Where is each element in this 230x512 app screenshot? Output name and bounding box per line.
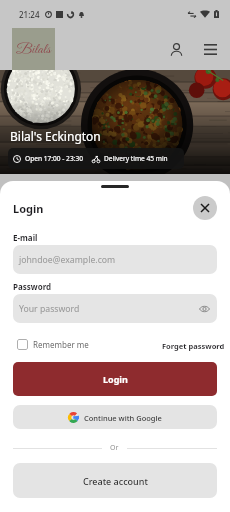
button[interactable]: Close — [193, 196, 217, 220]
staticText: johndoe@example.com — [19, 254, 116, 266]
staticText: Remember me — [33, 339, 89, 350]
button[interactable]: Account — [164, 37, 188, 61]
staticText: Continue with Google — [84, 413, 162, 423]
button[interactable]: Remember me — [17, 339, 89, 350]
staticText: Login — [13, 201, 44, 216]
button[interactable]: Create account — [13, 463, 217, 498]
button[interactable]: Continue with Google — [13, 405, 217, 429]
button[interactable]: Show password — [197, 302, 211, 316]
staticText: Login — [103, 373, 128, 385]
staticText: Password — [13, 281, 52, 292]
staticText: Bilal's Eckington — [10, 128, 101, 144]
staticText: 21:24 — [19, 9, 40, 20]
button[interactable]: Login — [13, 362, 217, 396]
staticText: Create account — [83, 475, 148, 487]
staticText: Delivery time 45 min — [104, 154, 168, 163]
staticText: E-mail — [13, 232, 38, 243]
button[interactable]: johndoe@example.com — [13, 245, 217, 274]
staticText: Or — [110, 443, 119, 453]
button[interactable]: Your password — [13, 294, 217, 323]
staticText: Your password — [19, 303, 80, 315]
button[interactable]: Menu — [198, 37, 222, 61]
button[interactable]: Forget password — [162, 341, 225, 351]
staticText: Open 17:00 - 23:30 — [25, 154, 83, 163]
staticText: Bilals — [16, 40, 51, 59]
